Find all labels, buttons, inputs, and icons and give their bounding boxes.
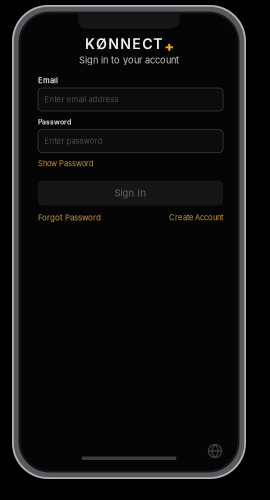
button[interactable]: Language [208, 444, 221, 457]
staticText: Sign in to your account [79, 54, 179, 66]
staticText: E [132, 35, 141, 53]
staticText: Enter password [44, 136, 102, 146]
staticText: N [108, 35, 119, 53]
staticText: C [142, 35, 152, 53]
staticText: Forgot Password [38, 213, 101, 222]
button[interactable]: Forgot Password [38, 213, 101, 221]
staticText: Password [38, 118, 71, 126]
staticText: Sign In [114, 187, 146, 199]
staticText: Enter email address [44, 95, 118, 104]
staticText: T [153, 35, 162, 53]
button[interactable]: Show Password [38, 159, 94, 167]
button[interactable]: Sign In [38, 180, 223, 205]
staticText: Email [38, 76, 58, 85]
staticText: K [85, 35, 95, 53]
staticText: Show Password [38, 159, 94, 168]
staticText: Ø [96, 35, 107, 53]
staticText: Create Account [169, 213, 223, 222]
staticText: N [120, 35, 131, 53]
button[interactable]: Create Account [169, 213, 223, 221]
